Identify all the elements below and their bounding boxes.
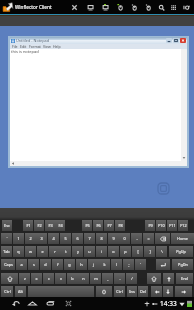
- button[interactable]: Minimise: [166, 38, 172, 43]
- button[interactable]: i: [96, 246, 107, 257]
- button[interactable]: Del: [138, 286, 148, 297]
- button[interactable]: Home: [171, 233, 194, 244]
- button[interactable]: Arrow right: [175, 286, 192, 297]
- button[interactable]: Scroll left: [10, 161, 16, 166]
- button[interactable]: F2: [34, 220, 44, 231]
- button[interactable]: Shift: [147, 273, 161, 284]
- button[interactable]: .: [114, 273, 125, 284]
- button[interactable]: h: [76, 259, 87, 270]
- button[interactable]: Settings: [180, 0, 193, 14]
- button[interactable]: 5: [60, 233, 71, 244]
- button[interactable]: F3: [45, 220, 55, 231]
- button[interactable]: Keyboard: [167, 0, 180, 14]
- button[interactable]: \: [156, 246, 167, 257]
- button[interactable]: F4: [55, 220, 65, 231]
- button[interactable]: Zoom: [155, 0, 168, 14]
- button[interactable]: r: [49, 246, 60, 257]
- button[interactable]: Scroll down: [181, 155, 187, 161]
- button[interactable]: u: [84, 246, 95, 257]
- button[interactable]: 9: [108, 233, 119, 244]
- button[interactable]: Shift: [1, 273, 18, 284]
- button[interactable]: d: [40, 259, 51, 270]
- button[interactable]: End: [176, 273, 193, 284]
- button[interactable]: 2: [25, 233, 36, 244]
- button[interactable]: b: [67, 273, 78, 284]
- button[interactable]: a: [16, 259, 27, 270]
- button[interactable]: ;: [123, 259, 134, 270]
- button[interactable]: Disconnect: [68, 0, 81, 14]
- button[interactable]: Ctrl: [114, 286, 125, 297]
- button[interactable]: ,: [102, 273, 113, 284]
- button[interactable]: F8: [115, 220, 125, 231]
- button[interactable]: View: [42, 44, 52, 49]
- button[interactable]: 6: [72, 233, 83, 244]
- button[interactable]: F9: [145, 220, 155, 231]
- button[interactable]: v: [55, 273, 66, 284]
- button[interactable]: Esc: [2, 220, 12, 231]
- button[interactable]: Left click: [128, 0, 141, 14]
- button[interactable]: Help: [52, 44, 62, 49]
- button[interactable]: Format: [28, 44, 42, 49]
- button[interactable]: Menu: [96, 286, 112, 297]
- button[interactable]: Home: [23, 297, 41, 310]
- button[interactable]: Space: [28, 286, 94, 297]
- button[interactable]: w: [25, 246, 36, 257]
- button[interactable]: F12: [178, 220, 188, 231]
- button[interactable]: Alt: [15, 286, 26, 297]
- button[interactable]: PgUp: [169, 246, 193, 257]
- button[interactable]: e: [37, 246, 48, 257]
- button[interactable]: 8: [96, 233, 107, 244]
- button[interactable]: -: [131, 233, 142, 244]
- button[interactable]: ': [135, 259, 146, 270]
- button[interactable]: F11: [167, 220, 177, 231]
- button[interactable]: t: [60, 246, 71, 257]
- button[interactable]: l: [111, 259, 122, 270]
- button[interactable]: Ins: [127, 286, 137, 297]
- button[interactable]: Recents: [41, 297, 59, 310]
- button[interactable]: Arrow up: [163, 273, 174, 284]
- button[interactable]: Mouse add: [114, 0, 127, 14]
- button[interactable]: Ctrl: [1, 286, 13, 297]
- button[interactable]: F1: [23, 220, 33, 231]
- button[interactable]: Tab: [1, 246, 12, 257]
- button[interactable]: File: [11, 44, 19, 49]
- button[interactable]: 7: [84, 233, 95, 244]
- button[interactable]: F10: [156, 220, 166, 231]
- button[interactable]: F7: [104, 220, 114, 231]
- button[interactable]: [: [132, 246, 143, 257]
- button[interactable]: /: [126, 273, 137, 284]
- button[interactable]: f: [52, 259, 63, 270]
- button[interactable]: x: [31, 273, 42, 284]
- button[interactable]: y: [72, 246, 83, 257]
- button[interactable]: Enter: [156, 259, 170, 270]
- button[interactable]: z: [19, 273, 30, 284]
- button[interactable]: `: [1, 233, 12, 244]
- button[interactable]: Desktop shortcut: [158, 183, 169, 194]
- button[interactable]: Add screen: [99, 0, 112, 14]
- button[interactable]: Close: [180, 38, 186, 43]
- button[interactable]: Arrow down: [163, 286, 173, 297]
- button[interactable]: Right click: [142, 0, 155, 14]
- button[interactable]: =: [143, 233, 154, 244]
- button[interactable]: Edit: [19, 44, 28, 49]
- button[interactable]: ]: [144, 246, 155, 257]
- button[interactable]: m: [90, 273, 101, 284]
- button[interactable]: s: [28, 259, 39, 270]
- button[interactable]: Arrow left: [151, 286, 162, 297]
- button[interactable]: Backspace: [155, 233, 170, 244]
- button[interactable]: Screen: [84, 0, 97, 14]
- button[interactable]: Caps: [1, 259, 15, 270]
- button[interactable]: F6: [93, 220, 103, 231]
- button[interactable]: 3: [36, 233, 47, 244]
- button[interactable]: c: [43, 273, 54, 284]
- button[interactable]: j: [88, 259, 99, 270]
- button[interactable]: F5: [82, 220, 92, 231]
- button[interactable]: Back: [6, 297, 24, 310]
- button[interactable]: k: [99, 259, 110, 270]
- button[interactable]: PgDn: [172, 259, 193, 270]
- button[interactable]: 1: [13, 233, 24, 244]
- button[interactable]: g: [64, 259, 75, 270]
- button[interactable]: o: [108, 246, 119, 257]
- button[interactable]: n: [78, 273, 89, 284]
- button[interactable]: 4: [48, 233, 59, 244]
